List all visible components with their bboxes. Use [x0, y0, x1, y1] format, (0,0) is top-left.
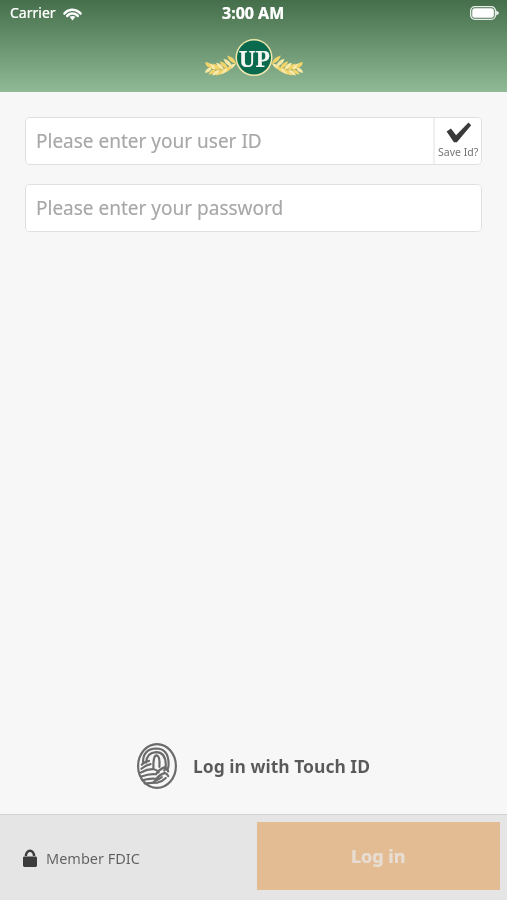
staticText: Save Id? — [438, 145, 479, 159]
staticText: Carrier — [10, 3, 56, 22]
button[interactable]: Member FDIC — [0, 842, 150, 874]
button[interactable]: Please enter your user ID — [25, 117, 434, 165]
staticText: Log in with Touch ID — [193, 754, 370, 778]
staticText: Log in — [351, 844, 406, 869]
staticText: Please enter your password — [36, 195, 284, 221]
button[interactable]: Log in — [257, 822, 500, 890]
staticText: Please enter your user ID — [36, 128, 262, 154]
button[interactable]: Log in with Touch ID — [127, 737, 380, 795]
button[interactable]: Please enter your password — [25, 184, 482, 232]
staticText: UP — [239, 43, 270, 73]
staticText: 3:00 AM — [222, 2, 285, 24]
staticText: Member FDIC — [46, 848, 140, 868]
button[interactable]: Save Id — [434, 117, 482, 165]
